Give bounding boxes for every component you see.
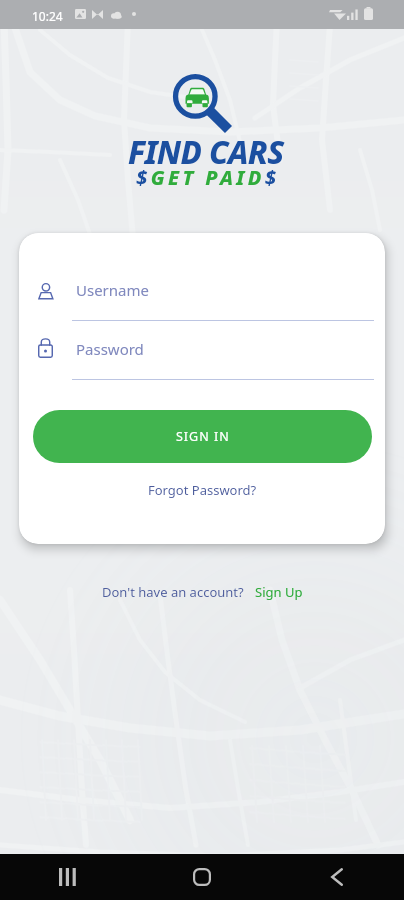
staticText: Username bbox=[76, 280, 149, 300]
button[interactable]: Forgot Password? bbox=[148, 481, 257, 499]
staticText: $GET PAID$ bbox=[136, 164, 280, 191]
staticText: Sign Up bbox=[255, 583, 303, 601]
staticText: FIND CARS bbox=[128, 130, 284, 173]
button[interactable]: Home bbox=[134, 854, 269, 900]
button[interactable]: SIGN IN bbox=[33, 410, 372, 463]
button[interactable]: Back bbox=[269, 854, 404, 900]
staticText: Don't have an account? bbox=[102, 583, 244, 601]
button[interactable]: Recent apps bbox=[0, 854, 134, 900]
staticText: SIGN IN bbox=[176, 428, 230, 445]
staticText: Forgot Password? bbox=[148, 481, 257, 499]
staticText: Password bbox=[76, 339, 144, 359]
button[interactable]: Sign Up bbox=[255, 583, 303, 601]
staticText: 10:24 bbox=[32, 8, 63, 24]
